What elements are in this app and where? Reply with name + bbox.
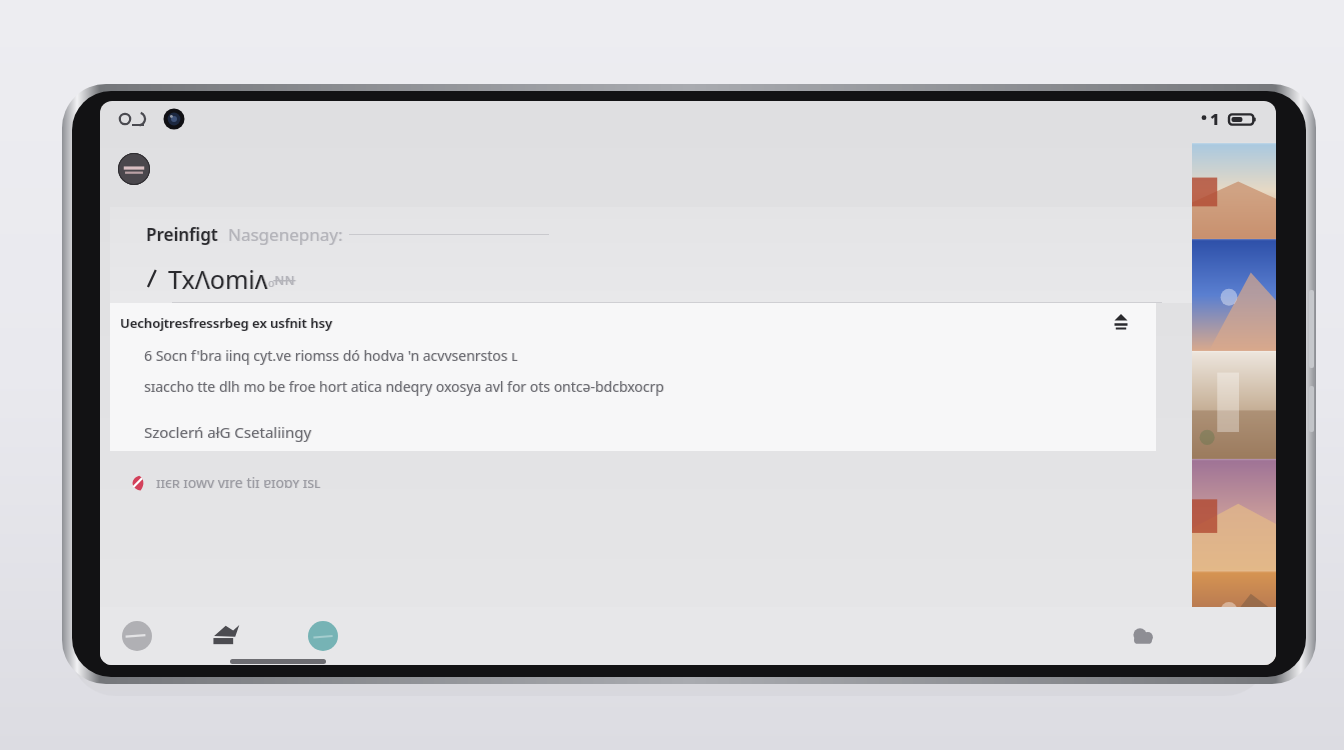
staticText: 1 xyxy=(1210,108,1220,130)
staticText: ₒɴ̶ɴ̶ xyxy=(268,268,295,290)
button[interactable]: Photo gallery xyxy=(1192,143,1276,665)
staticText: Nasgenepnay: xyxy=(228,223,343,246)
staticText: 6 Socn f'bra iinq cyt.ve riomss dó hodva… xyxy=(145,346,519,365)
staticText: sɪaccho tte dlh mo be froe hort atica nd… xyxy=(144,377,664,396)
staticText: Uechojtresfressrbeg ex usfnit hsy xyxy=(121,314,334,332)
button[interactable]: Home xyxy=(208,619,242,653)
button[interactable]: Expand message xyxy=(1108,309,1134,335)
staticText: ɪɪєʀ ɪowv vɪre tiɪ ɐɪoɒʏ ɪsʟ xyxy=(157,473,322,492)
staticText: Szoclerń ałG Csetaliingy xyxy=(144,422,312,442)
staticText: Preinfigt xyxy=(146,223,218,246)
staticText: sɪaccho tte dlh mo be froe hort atica nd… xyxy=(145,377,665,396)
button[interactable]: ɪɪєʀ ɪowv vɪre tiɪ ɐɪoɒʏ ɪsʟ xyxy=(128,473,321,492)
button[interactable]: Back xyxy=(122,621,152,651)
button[interactable]: Cloud xyxy=(1128,621,1158,651)
button[interactable]: Compose xyxy=(308,621,338,651)
button[interactable]: Uechojtresfressrbeg ex usfnit hsy xyxy=(110,303,1156,451)
button[interactable]: Account xyxy=(118,153,150,185)
staticText: 6 Socn f'bra iinq cyt.ve riomss dó hodva… xyxy=(144,346,518,365)
staticText: ɪɪєʀ ɪowv vɪre tiɪ ɐɪoɒʏ ɪsʟ xyxy=(156,473,321,492)
staticText: TxΛomiʌ xyxy=(169,262,269,296)
staticText: ₒɴ̶ɴ̶ xyxy=(269,268,296,290)
staticText: TxΛomiʌ xyxy=(168,262,268,296)
staticText: Uechojtresfressrbeg ex usfnit hsy xyxy=(120,314,333,332)
staticText: Nasgenepnay: xyxy=(229,223,344,246)
staticText: Szoclerń ałG Csetaliingy xyxy=(145,422,313,442)
staticText: Preinfigt xyxy=(147,223,219,246)
